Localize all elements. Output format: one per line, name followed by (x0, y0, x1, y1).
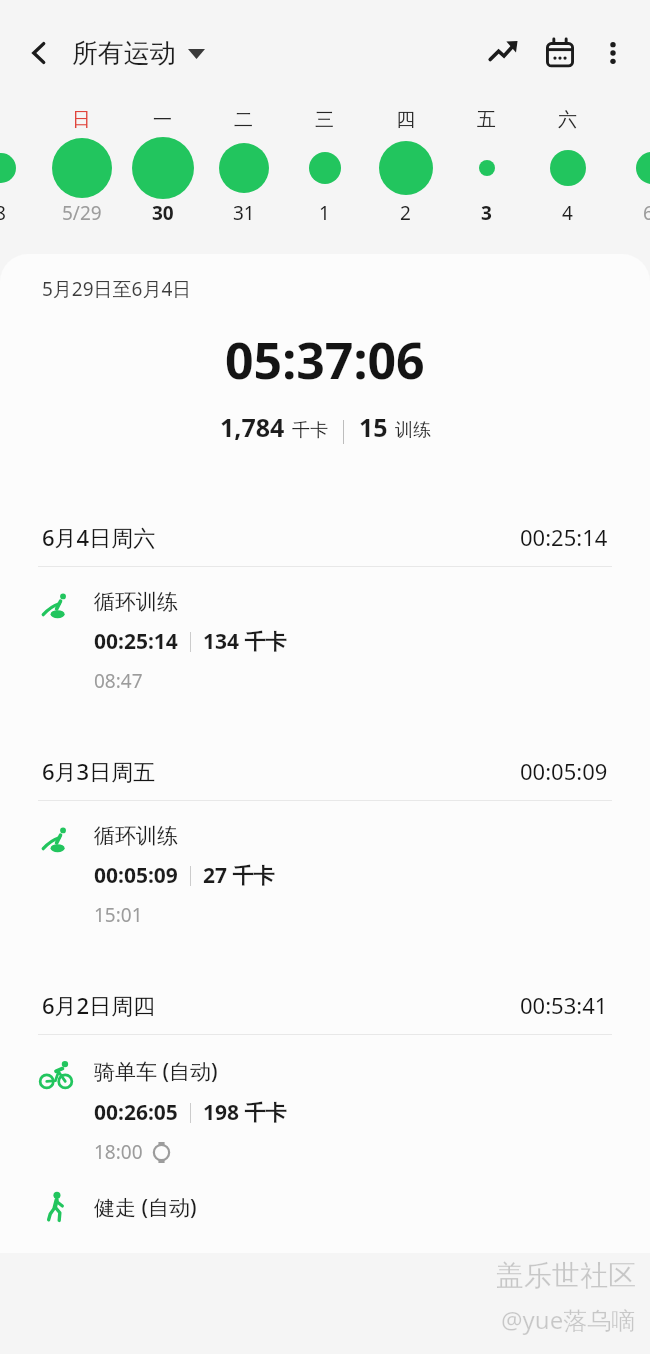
button[interactable]: 四 (365, 104, 446, 236)
staticText: 循环训练 (94, 823, 178, 849)
button[interactable]: 6月2日周四 (0, 990, 650, 1035)
staticText: 15:01 (94, 902, 143, 928)
staticText: 15 (359, 410, 388, 444)
button[interactable]: 6/ (611, 104, 650, 236)
staticText: 00:25:14 (520, 522, 608, 552)
staticText: @yue落乌嘀 (501, 1303, 636, 1336)
staticText: 二 (234, 108, 253, 132)
staticText: 健走 (自动) (94, 1193, 197, 1222)
button[interactable]: Calendar (532, 25, 588, 81)
staticText: 1,784 (220, 410, 285, 444)
staticText: 盖乐世社区 (496, 1258, 636, 1293)
button[interactable]: 一 (122, 104, 203, 236)
staticText: 4 (562, 200, 573, 226)
button[interactable]: 五 (446, 104, 527, 236)
staticText: 日 (72, 108, 91, 132)
staticText: 31 (233, 200, 255, 226)
staticText: 8 (0, 200, 6, 226)
button[interactable]: Trends (476, 25, 532, 81)
button[interactable]: 六 (527, 104, 608, 236)
staticText: 6月4日周六 (42, 522, 156, 552)
staticText: 00:05:09 (94, 861, 178, 890)
staticText: 05:37:06 (225, 326, 425, 394)
staticText: 6月2日周四 (42, 990, 156, 1020)
staticText: 六 (558, 108, 577, 132)
staticText: 3 (481, 200, 492, 226)
button[interactable]: 循环训练 (0, 801, 650, 928)
button[interactable]: 6月3日周五 (0, 756, 650, 801)
staticText: 骑单车 (自动) (94, 1057, 218, 1086)
staticText: 00:25:14 (94, 627, 178, 656)
staticText: 08:47 (94, 668, 143, 694)
button[interactable]: Back (12, 26, 66, 80)
button[interactable]: More options (588, 28, 638, 78)
staticText: 五 (477, 108, 496, 132)
staticText: 循环训练 (94, 589, 178, 615)
staticText: 1 (319, 200, 330, 226)
staticText: 三 (315, 108, 334, 132)
staticText: 00:05:09 (520, 756, 608, 786)
staticText: 27 千卡 (203, 861, 275, 890)
staticText: 5/29 (62, 200, 102, 226)
button[interactable]: 6月4日周六 (0, 522, 650, 567)
staticText: 四 (396, 108, 415, 132)
staticText: 一 (153, 108, 172, 132)
staticText: 00:26:05 (94, 1098, 178, 1127)
staticText: 6月3日周五 (42, 756, 156, 786)
button[interactable]: 5月29日至6月4日 (0, 254, 650, 476)
button[interactable]: 循环训练 (0, 567, 650, 694)
button[interactable]: 所有运动 (66, 29, 211, 78)
staticText: 134 千卡 (203, 627, 287, 656)
button[interactable]: 骑单车 (自动) (0, 1035, 650, 1165)
staticText: 2 (400, 200, 411, 226)
button[interactable]: 三 (284, 104, 365, 236)
button[interactable]: 二 (203, 104, 284, 236)
staticText: 所有运动 (72, 37, 176, 70)
button[interactable]: 健走 (自动) (0, 1191, 650, 1223)
staticText: 198 千卡 (203, 1098, 287, 1127)
staticText: 5月29日至6月4日 (42, 276, 192, 302)
staticText: 千卡 (292, 419, 328, 442)
button[interactable]: 8 (0, 104, 41, 236)
staticText: 6/ (643, 200, 650, 226)
staticText: 30 (152, 200, 174, 226)
staticText: 18:00 (94, 1139, 143, 1165)
staticText: 训练 (395, 419, 431, 442)
staticText: 00:53:41 (520, 990, 608, 1020)
button[interactable]: 日 (41, 104, 122, 236)
